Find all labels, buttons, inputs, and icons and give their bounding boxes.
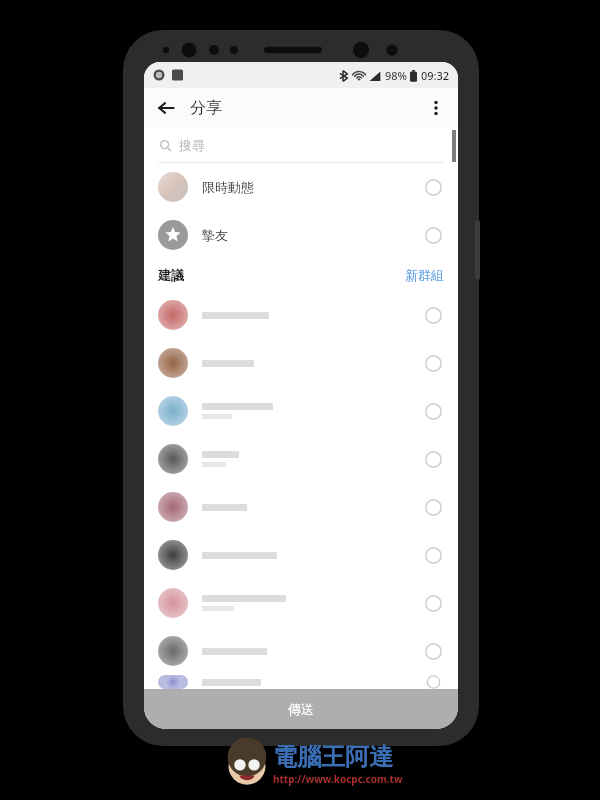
- staticText: 摯友: [202, 227, 228, 243]
- button[interactable]: [144, 435, 458, 483]
- button[interactable]: 搜尋: [144, 128, 458, 162]
- staticText: 09:32: [421, 68, 450, 83]
- button[interactable]: 傳送: [144, 689, 458, 729]
- button[interactable]: [144, 387, 458, 435]
- button[interactable]: 摯友: [144, 211, 458, 259]
- staticText: 建議: [158, 267, 184, 283]
- button[interactable]: [144, 579, 458, 627]
- staticText: http://www.kocpc.com.tw: [273, 772, 403, 786]
- button[interactable]: Back: [150, 92, 182, 124]
- button[interactable]: [144, 531, 458, 579]
- staticText: 分享: [190, 98, 222, 118]
- button[interactable]: [144, 339, 458, 387]
- staticText: 搜尋: [179, 137, 205, 153]
- staticText: 新群組: [405, 267, 444, 283]
- button[interactable]: [144, 675, 458, 689]
- staticText: 限時動態: [202, 179, 254, 195]
- button[interactable]: More options: [420, 92, 452, 124]
- button[interactable]: [144, 483, 458, 531]
- button[interactable]: [144, 627, 458, 675]
- button[interactable]: 限時動態: [144, 163, 458, 211]
- staticText: 傳送: [288, 701, 314, 717]
- button[interactable]: 新群組: [405, 267, 458, 283]
- staticText: 98%: [385, 68, 407, 83]
- button[interactable]: [144, 291, 458, 339]
- staticText: 電腦王阿達: [273, 742, 393, 772]
